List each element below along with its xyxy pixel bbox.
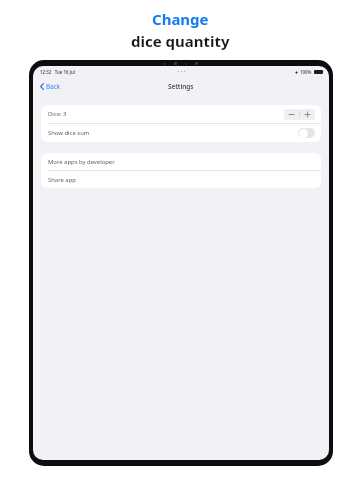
staticText: Show dice sum (48, 129, 90, 137)
button[interactable]: More apps by developer (41, 153, 321, 170)
staticText: 100% (300, 69, 312, 75)
staticText: dice quantity (131, 31, 230, 51)
staticText: Back (46, 82, 61, 91)
button[interactable]: Show dice sum toggle (298, 128, 315, 138)
staticText: Change (152, 9, 209, 29)
button[interactable]: Show dice sum (41, 124, 321, 142)
button[interactable]: Dice: 3 (41, 105, 321, 123)
staticText: Dice: 3 (48, 110, 67, 118)
button[interactable]: Back (38, 80, 63, 93)
staticText: Settings (168, 82, 194, 91)
staticText: More apps by developer (48, 158, 115, 166)
button[interactable]: Share app (41, 171, 321, 188)
button[interactable]: Decrease dice count (284, 109, 299, 120)
staticText: 12:32 Tue 16 Jul (40, 69, 76, 75)
staticText: Share app (48, 176, 76, 184)
button[interactable]: Increase dice count (300, 109, 315, 120)
